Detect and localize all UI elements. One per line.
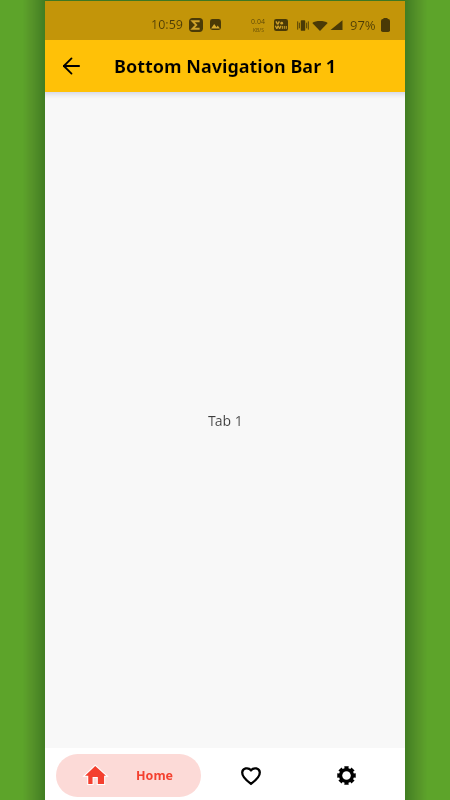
staticText: KB/S	[253, 27, 264, 34]
button[interactable]: Settings	[322, 754, 371, 797]
staticText: Home	[136, 767, 174, 784]
button[interactable]: Back	[50, 45, 92, 87]
staticText: Bottom Navigation Bar 1	[114, 54, 337, 79]
staticText: 10:59	[151, 16, 183, 33]
staticText: 97%	[350, 16, 376, 34]
button[interactable]: Favorites	[226, 754, 275, 797]
staticText: Tab 1	[208, 411, 243, 430]
staticText: 0.04	[251, 17, 265, 27]
button[interactable]: Home	[56, 754, 201, 797]
